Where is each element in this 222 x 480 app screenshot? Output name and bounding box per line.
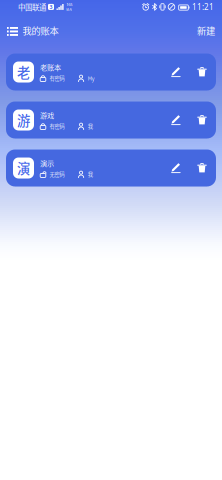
staticText: 我的账本	[22, 24, 58, 37]
staticText: 我	[88, 170, 93, 178]
button[interactable]: Delete	[189, 104, 215, 135]
staticText: 新建	[197, 24, 215, 37]
staticText: 165	[66, 2, 72, 7]
button[interactable]: Delete	[189, 152, 215, 183]
staticText: 游戏	[40, 110, 54, 120]
staticText: 演示	[40, 158, 54, 168]
staticText: 中国联通	[18, 1, 46, 12]
button[interactable]: Menu	[3, 18, 22, 42]
button[interactable]: Edit	[163, 104, 189, 135]
staticText: 3	[49, 3, 52, 10]
staticText: 11:21	[192, 2, 214, 12]
button[interactable]: 老	[6, 53, 216, 90]
staticText: B/s	[66, 7, 72, 12]
staticText: 无密码	[49, 170, 64, 178]
staticText: 老	[17, 62, 30, 82]
staticText: 有密码	[49, 122, 64, 130]
button[interactable]: 新建	[189, 18, 222, 42]
staticText: 游	[17, 110, 30, 130]
staticText: 演	[17, 158, 30, 178]
button[interactable]: 游	[6, 101, 216, 138]
button[interactable]: Delete	[189, 56, 215, 87]
button[interactable]: 演	[6, 149, 216, 186]
staticText: My	[88, 74, 95, 82]
button[interactable]: Edit	[163, 152, 189, 183]
staticText: 我	[88, 122, 93, 130]
button[interactable]: Edit	[163, 56, 189, 87]
staticText: 老账本	[40, 62, 61, 72]
staticText: 有密码	[49, 74, 64, 82]
